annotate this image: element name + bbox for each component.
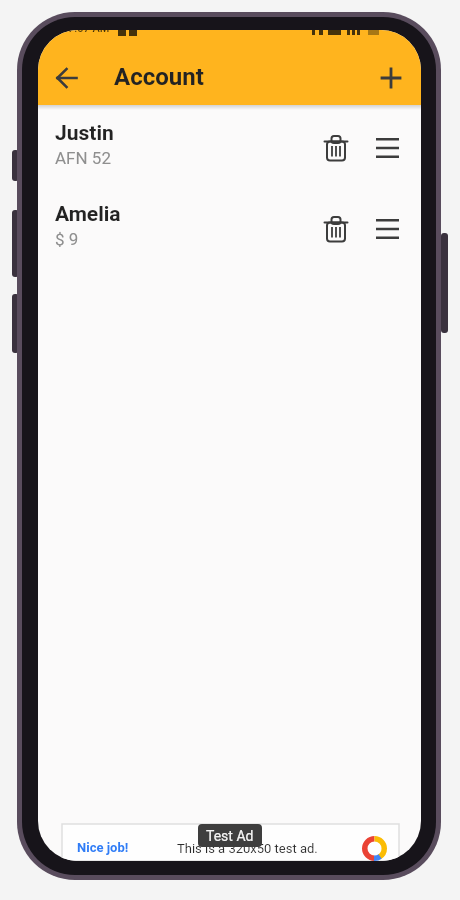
staticText: Nice job! bbox=[77, 840, 129, 855]
button[interactable] bbox=[314, 126, 358, 170]
button[interactable] bbox=[45, 56, 89, 100]
staticText: Amelia bbox=[55, 202, 121, 227]
button[interactable]: Nice job! bbox=[62, 824, 399, 861]
staticText: AFN 52 bbox=[55, 148, 111, 168]
staticText: 7:07 AM bbox=[68, 30, 110, 35]
button[interactable] bbox=[365, 126, 409, 170]
staticText: $ 9 bbox=[55, 229, 79, 249]
button[interactable]: Amelia bbox=[38, 189, 421, 270]
staticText: Justin bbox=[55, 121, 114, 146]
staticText: Test Ad bbox=[206, 828, 254, 844]
button[interactable] bbox=[365, 207, 409, 251]
button[interactable] bbox=[314, 207, 358, 251]
button[interactable]: Justin bbox=[38, 108, 421, 189]
button[interactable] bbox=[369, 56, 413, 100]
staticText: Account bbox=[114, 63, 204, 91]
staticText: This is a 320x50 test ad. bbox=[177, 841, 318, 856]
